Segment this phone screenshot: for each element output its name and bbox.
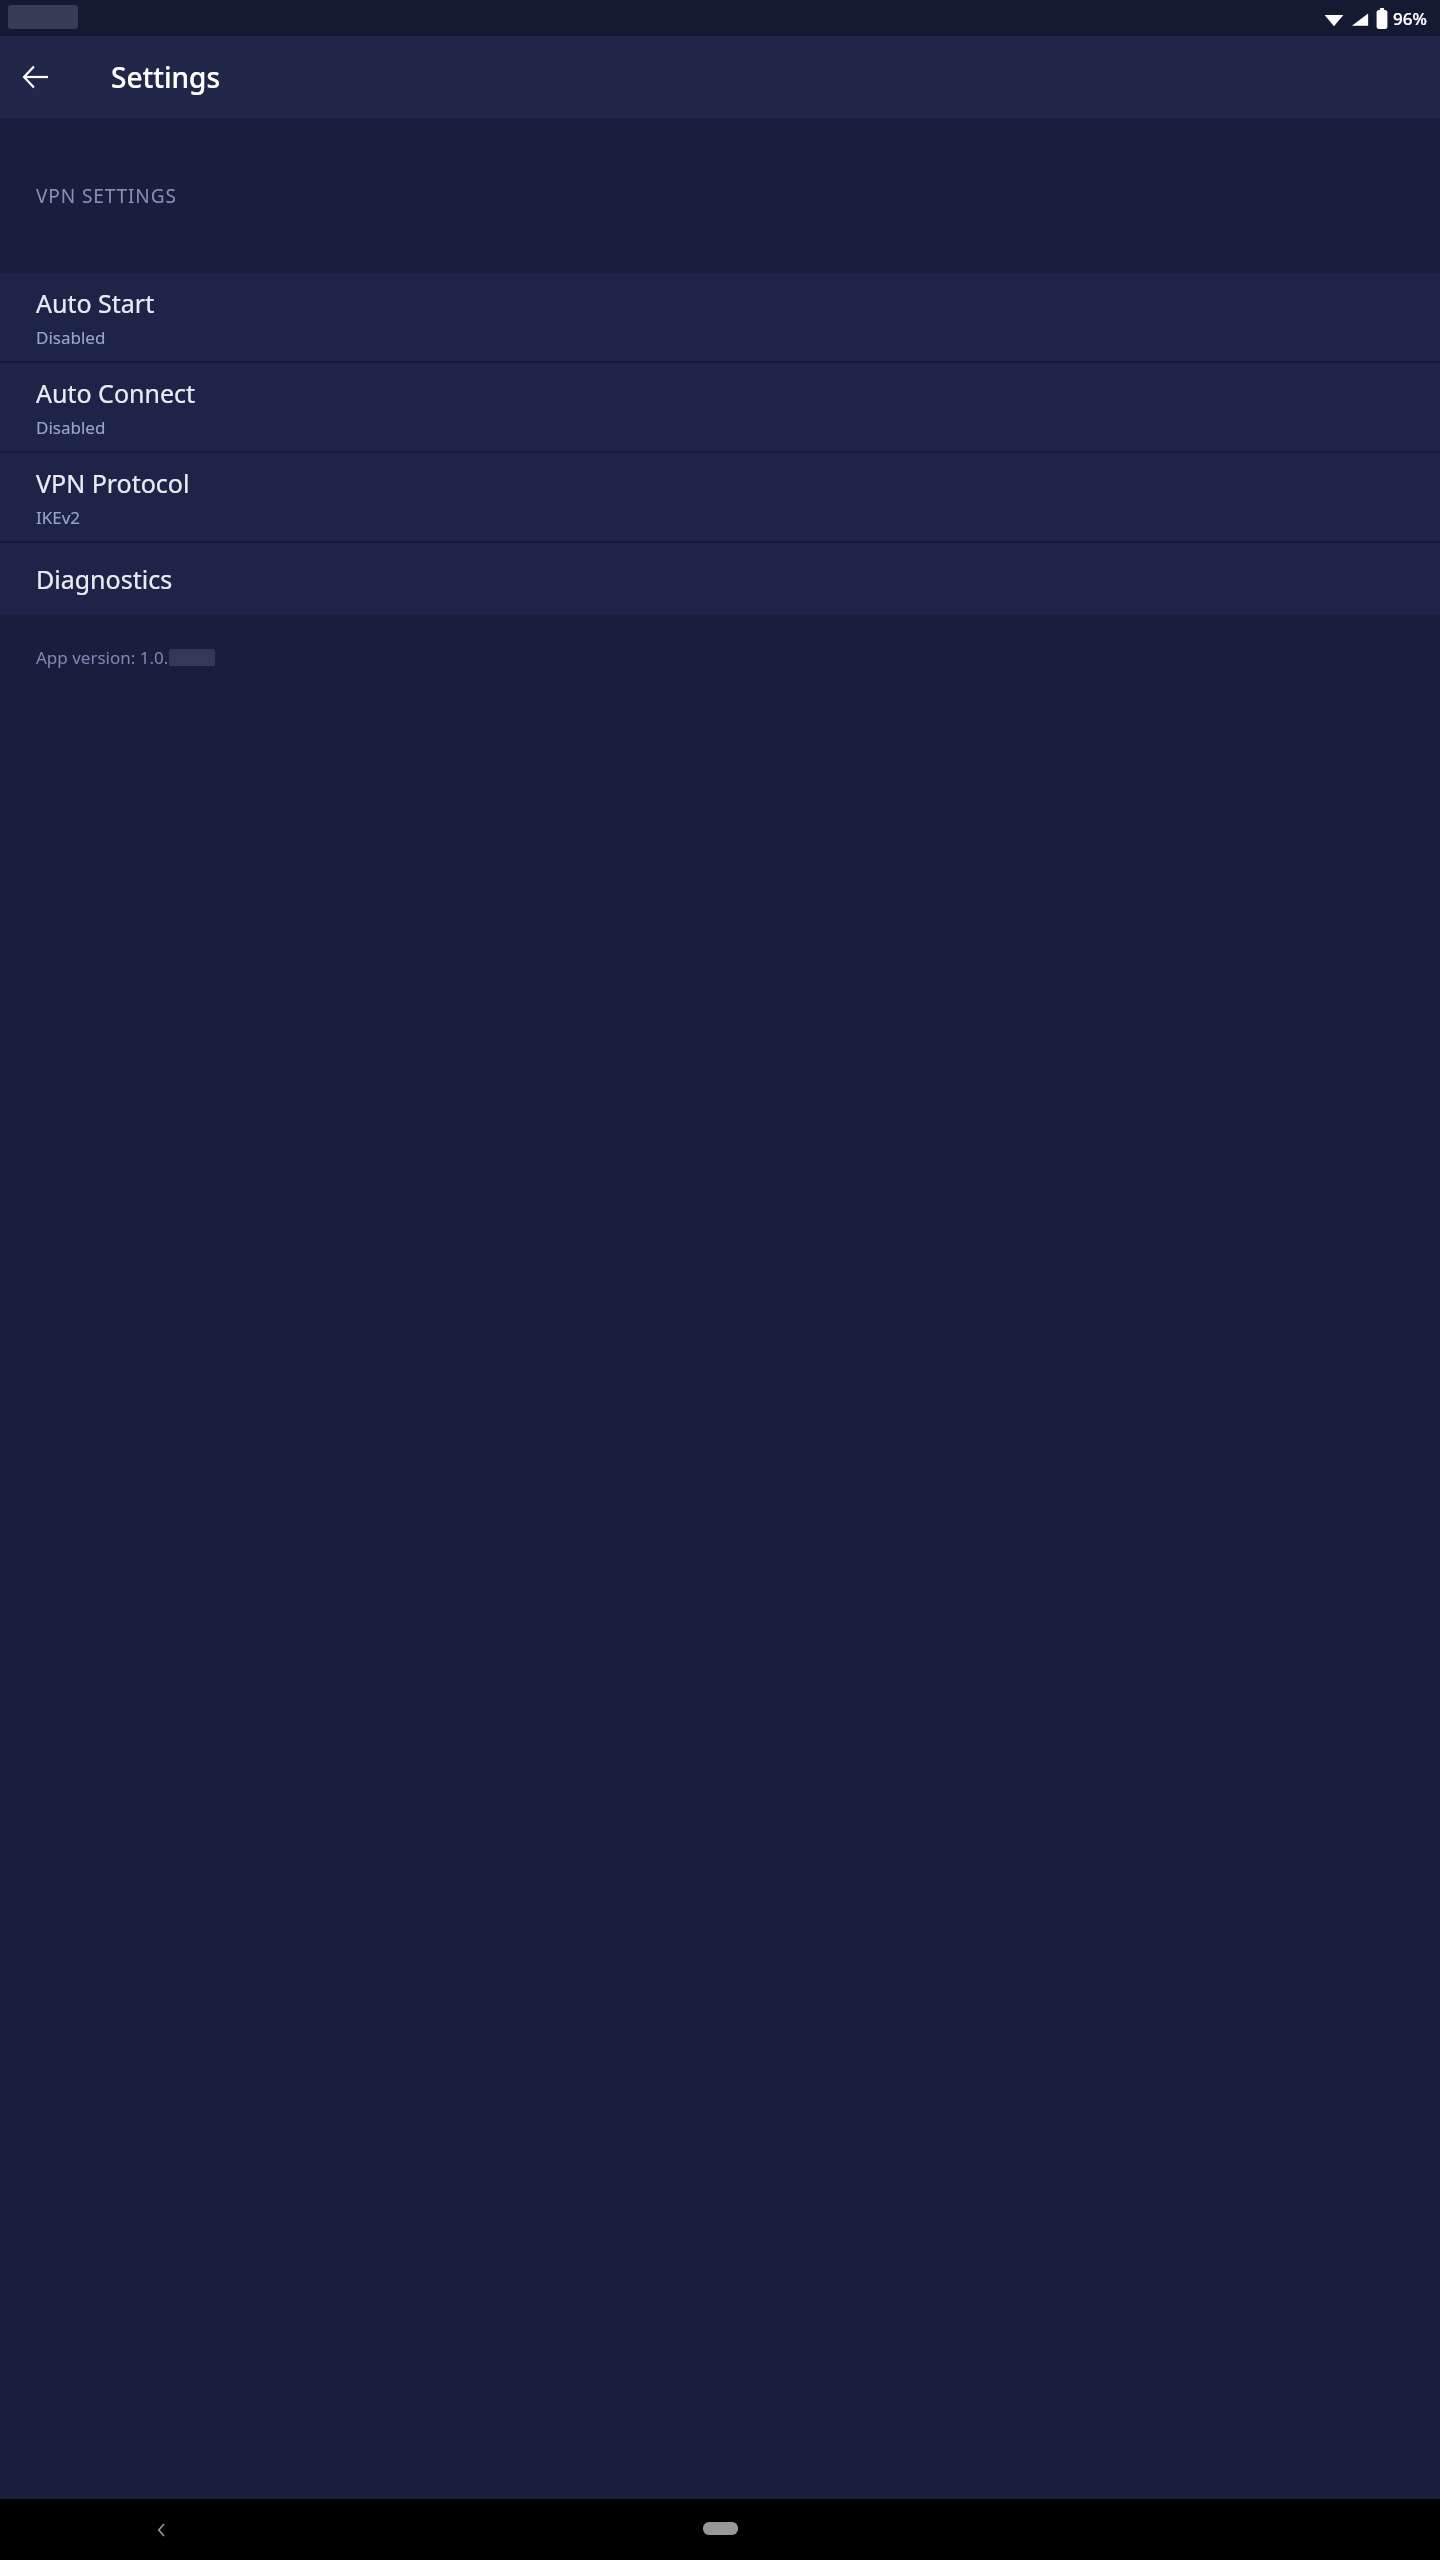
staticText: 96%: [1393, 7, 1427, 30]
staticText: Disabled: [36, 416, 106, 439]
button[interactable]: Diagnostics: [0, 543, 1440, 615]
button[interactable]: Back: [10, 51, 62, 103]
staticText: IKEv2: [36, 506, 81, 529]
button[interactable]: Auto Start: [0, 273, 1440, 361]
staticText: Auto Connect: [36, 376, 196, 410]
button[interactable]: Home: [703, 2522, 738, 2535]
staticText: Diagnostics: [36, 562, 173, 596]
button[interactable]: VPN Protocol: [0, 453, 1440, 541]
staticText: VPN Protocol: [36, 466, 190, 500]
staticText: Settings: [111, 58, 221, 96]
staticText: Auto Start: [36, 286, 155, 320]
staticText: App version: 1.0.: [36, 646, 169, 669]
button[interactable]: Auto Connect: [0, 363, 1440, 451]
staticText: Disabled: [36, 326, 106, 349]
button[interactable]: Back: [138, 2506, 186, 2554]
staticText: VPN SETTINGS: [36, 183, 177, 209]
